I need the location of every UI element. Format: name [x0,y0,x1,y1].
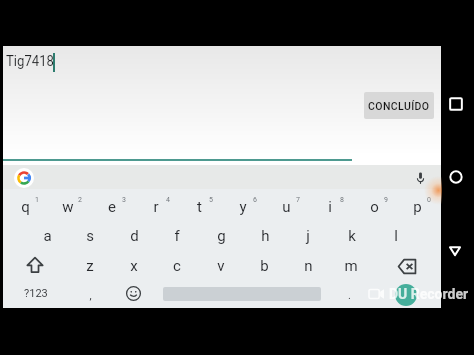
button[interactable]: j [292,224,324,248]
button[interactable]: Back [446,242,464,260]
staticText: p [413,198,422,216]
button[interactable]: w [52,195,84,219]
staticText: 4 [166,196,170,204]
staticText: 2 [78,196,82,204]
staticText: , [89,289,92,302]
button[interactable]: y [227,195,259,219]
button[interactable]: Voice input [415,171,426,185]
staticText: z [86,257,94,275]
staticText: 8 [340,196,344,204]
staticText: h [261,227,270,245]
staticText: e [108,198,116,216]
staticText: w [62,198,74,216]
staticText: b [260,257,269,275]
button[interactable]: m [335,254,367,278]
staticText: 1 [35,196,39,204]
staticText: 3 [122,196,126,204]
button[interactable]: h [249,224,281,248]
button[interactable]: r [140,195,172,219]
staticText: l [394,227,398,245]
staticText: t [197,198,202,216]
button[interactable]: 9 [370,188,402,212]
staticText: k [348,227,356,245]
button[interactable]: a [31,224,63,248]
staticText: s [86,227,94,245]
button[interactable]: g [205,224,237,248]
button[interactable]: n [292,254,324,278]
staticText: CONCLUÍDO [368,100,430,112]
button[interactable]: p [401,195,433,219]
staticText: ?123 [24,287,48,300]
button[interactable]: s [74,224,106,248]
staticText: i [328,198,332,216]
staticText: f [174,227,180,245]
button[interactable]: , [74,283,106,307]
staticText: g [217,227,226,245]
staticText: 5 [209,196,213,204]
button[interactable]: i [314,195,346,219]
button[interactable]: q [9,195,41,219]
button[interactable]: 7 [282,188,314,212]
button[interactable]: 6 [239,188,271,212]
button[interactable]: Shift [27,257,43,273]
staticText: o [370,198,379,216]
button[interactable]: e [96,195,128,219]
button[interactable]: l [380,224,412,248]
staticText: x [130,257,138,275]
staticText: 6 [253,196,257,204]
staticText: q [21,198,30,216]
button[interactable]: Recent apps [447,95,465,113]
button[interactable]: 8 [326,188,358,212]
button[interactable]: CONCLUÍDO [364,92,434,119]
staticText: 7 [296,196,300,204]
button[interactable]: 1 [21,188,53,212]
button[interactable]: o [358,195,390,219]
button[interactable]: Enter [395,284,417,306]
staticText: c [173,257,181,275]
button[interactable]: Backspace [398,259,416,274]
staticText: y [239,198,247,216]
button[interactable]: . [333,283,365,307]
button[interactable]: z [74,254,106,278]
staticText: v [217,257,225,275]
button[interactable]: 5 [195,188,227,212]
staticText: n [304,257,313,275]
button[interactable]: 0 [413,188,445,212]
button[interactable]: t [183,195,215,219]
button[interactable]: c [161,254,193,278]
button[interactable]: Home [447,168,465,186]
button[interactable]: 3 [108,188,140,212]
button[interactable]: d [118,224,150,248]
staticText: a [43,227,52,245]
button[interactable]: k [336,224,368,248]
button[interactable]: b [248,254,280,278]
button[interactable]: u [270,195,302,219]
staticText: 0 [427,196,431,204]
staticText: DU Recorder [389,286,469,302]
button[interactable]: Emoji [126,286,141,301]
staticText: j [306,227,310,245]
staticText: r [153,198,159,216]
staticText: Tig7418 [6,52,54,70]
staticText: u [282,198,291,216]
button[interactable]: Google search [14,168,34,188]
button[interactable]: x [118,254,150,278]
button[interactable]: ?123 [18,284,54,302]
button[interactable]: 4 [152,188,184,212]
button[interactable]: f [161,224,193,248]
staticText: 9 [384,196,388,204]
staticText: d [130,227,139,245]
button[interactable]: 2 [64,188,96,212]
staticText: . [348,289,351,302]
staticText: m [344,257,358,275]
button[interactable]: v [205,254,237,278]
